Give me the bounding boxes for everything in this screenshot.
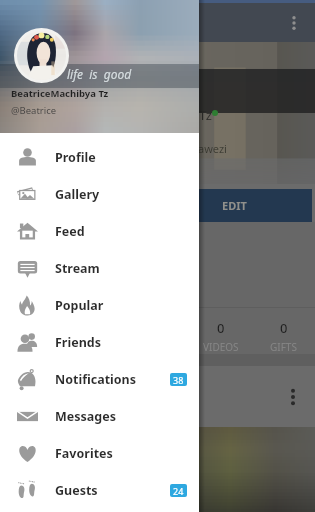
button[interactable]: Friends xyxy=(0,324,199,361)
staticText: Gallery xyxy=(55,186,100,203)
staticText: 38 xyxy=(173,374,184,386)
button[interactable]: More options xyxy=(279,8,309,38)
staticText: Popular xyxy=(55,297,104,314)
button[interactable]: EDIT xyxy=(3,189,312,222)
staticText: Stream xyxy=(55,260,100,277)
button[interactable]: Profile photo xyxy=(14,28,69,83)
staticText: BeatriceMachibya Tz xyxy=(11,87,109,100)
staticText: FANS xyxy=(82,340,107,354)
button[interactable]: Notifications xyxy=(0,361,199,398)
button[interactable]: Post options xyxy=(279,383,307,411)
button[interactable]: Guests xyxy=(0,472,199,509)
staticText: EDIT xyxy=(222,198,247,213)
staticText: Messages xyxy=(55,408,116,425)
button[interactable]: Feed xyxy=(0,213,199,250)
button[interactable]: Profile xyxy=(0,139,199,176)
staticText: 0 xyxy=(28,319,36,337)
staticText: VIDEOS xyxy=(203,340,239,354)
staticText: 24 xyxy=(173,485,184,497)
staticText: @Beatrice xyxy=(11,104,57,117)
staticText: Favorites xyxy=(55,445,113,462)
button[interactable]: Gallery xyxy=(0,176,199,213)
staticText: GIFTS xyxy=(270,340,297,354)
staticText: Friends xyxy=(55,334,101,351)
staticText: Notifications xyxy=(55,371,137,388)
staticText: 0 xyxy=(280,319,288,337)
button[interactable]: Popular xyxy=(0,287,199,324)
staticText: life is good xyxy=(67,66,132,82)
staticText: 0 xyxy=(217,319,225,337)
staticText: Tz xyxy=(199,106,212,124)
staticText: FRIENDS xyxy=(11,340,52,354)
staticText: Profile xyxy=(55,149,96,166)
button[interactable]: Favorites xyxy=(0,435,199,472)
staticText: Guests xyxy=(55,482,98,499)
button[interactable]: Messages xyxy=(0,398,199,435)
staticText: Feed xyxy=(55,223,85,240)
staticText: awezi xyxy=(198,141,227,156)
button[interactable]: Stream xyxy=(0,250,199,287)
